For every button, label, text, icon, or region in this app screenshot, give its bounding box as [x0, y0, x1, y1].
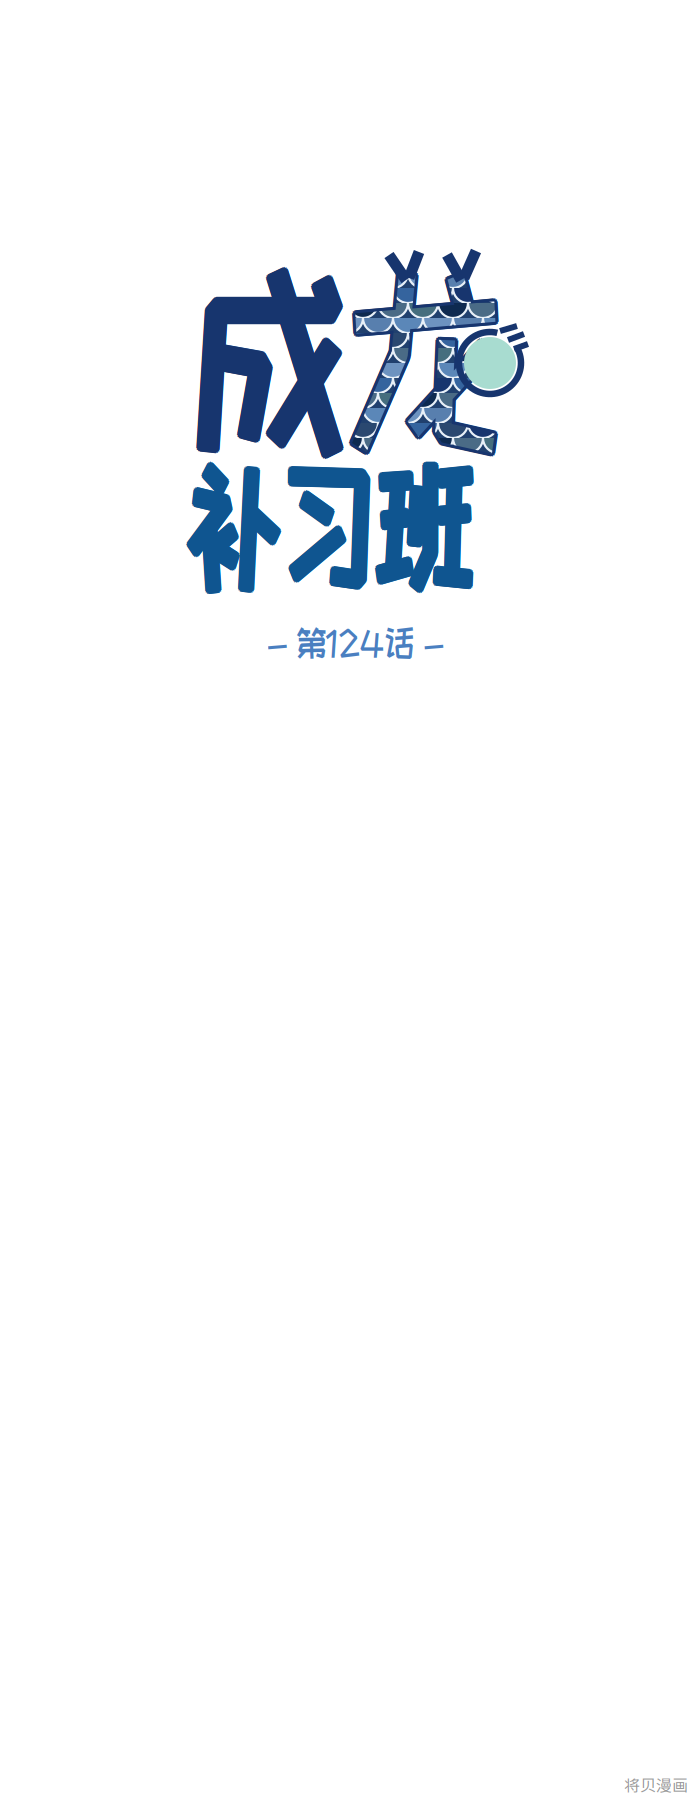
staticText: 龙	[345, 247, 545, 464]
staticText: 补习班	[188, 453, 599, 602]
staticText: 补习班	[184, 453, 595, 602]
staticText: 成	[190, 246, 390, 464]
staticText: 成	[192, 247, 392, 464]
staticText: 龙	[341, 248, 541, 465]
staticText: 成	[188, 253, 388, 470]
staticText: 成	[188, 247, 388, 464]
staticText: 将贝漫画	[624, 1773, 688, 1796]
staticText: 补习班	[188, 447, 599, 596]
staticText: 补习班	[186, 453, 597, 602]
staticText: 补习班	[184, 447, 595, 596]
staticText: 补习班	[189, 448, 600, 598]
staticText: 补习班	[183, 448, 594, 598]
staticText: 补习班	[183, 450, 594, 599]
staticText: 成	[187, 252, 387, 469]
staticText: 成	[187, 248, 387, 465]
staticText: 龙	[347, 250, 547, 467]
staticText: - 第124话 -	[266, 624, 464, 661]
staticText: 成	[193, 250, 393, 467]
staticText: 补习班	[186, 447, 597, 596]
staticText: 成	[193, 252, 393, 469]
staticText: 龙	[341, 252, 541, 469]
staticText: 补习班	[189, 450, 600, 599]
staticText: 龙	[343, 247, 543, 464]
staticText: 成	[190, 253, 390, 471]
staticText: 补习班	[183, 452, 594, 601]
staticText: 龙	[347, 252, 547, 469]
staticText: 龙	[341, 250, 541, 467]
staticText: 龙	[347, 248, 547, 465]
staticText: 补习班	[189, 452, 600, 601]
staticText: 成	[192, 253, 392, 470]
staticText: 龙	[343, 253, 543, 470]
staticText: 龙	[345, 253, 545, 470]
staticText: 成	[193, 248, 393, 466]
staticText: 成	[186, 250, 386, 467]
